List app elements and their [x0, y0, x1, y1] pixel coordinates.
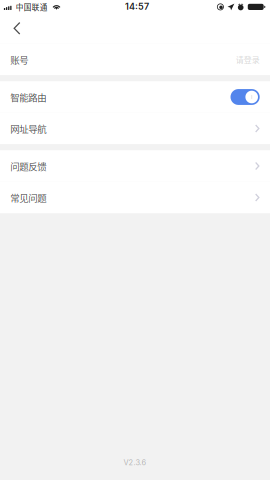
staticText: 网址导航: [10, 122, 46, 135]
staticText: 智能路由: [10, 90, 46, 104]
button[interactable]: 网址导航: [0, 113, 270, 144]
button[interactable]: 智能路由: [0, 81, 270, 113]
staticText: V2.3.6: [123, 458, 146, 467]
button[interactable]: Back: [3, 15, 30, 41]
button[interactable]: 问题反馈: [0, 150, 270, 182]
staticText: 问题反馈: [10, 159, 46, 173]
staticText: 14:57: [125, 1, 149, 12]
staticText: 请登录: [236, 54, 260, 65]
staticText: 中国联通: [16, 1, 48, 12]
button[interactable]: 账号: [0, 44, 270, 75]
button[interactable]: 常见问题: [0, 182, 270, 213]
staticText: 常见问题: [10, 191, 46, 204]
staticText: 账号: [10, 53, 28, 66]
